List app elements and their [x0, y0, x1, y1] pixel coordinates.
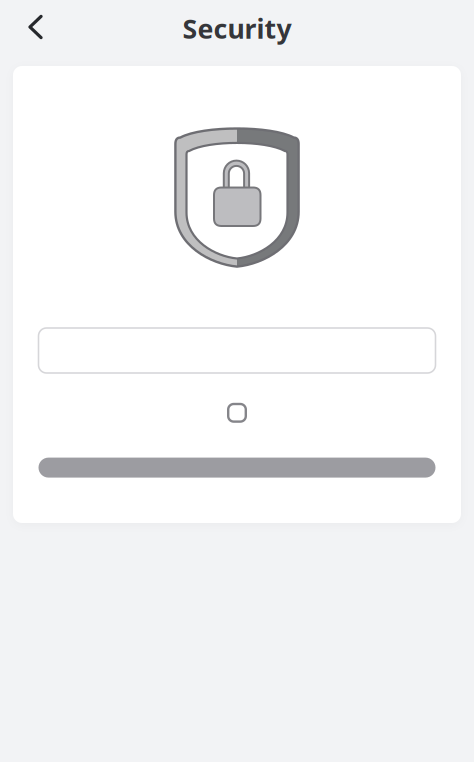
button[interactable]: Continue	[38, 458, 435, 478]
staticText: Security	[182, 11, 291, 46]
button[interactable]: Checkbox	[228, 404, 246, 422]
button[interactable]: Back	[0, 0, 58, 54]
button[interactable]: Text field	[38, 328, 435, 373]
